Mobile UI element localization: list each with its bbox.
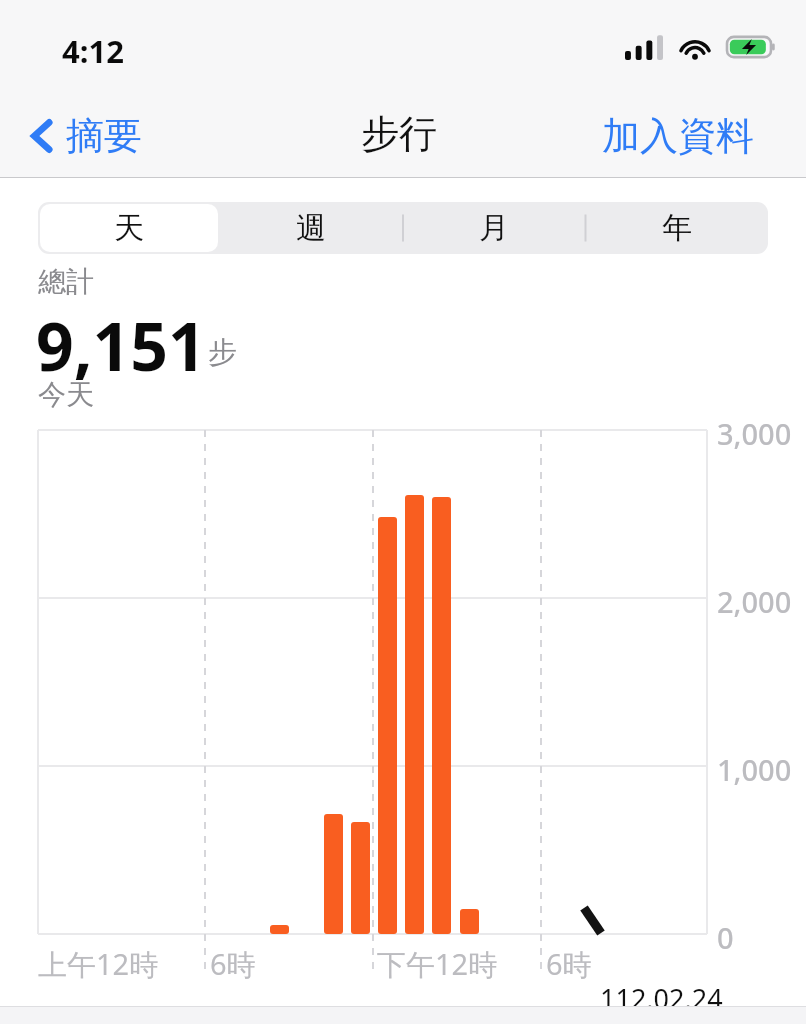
staticText: 1,000: [717, 750, 792, 789]
staticText: 下午12時: [377, 944, 498, 984]
staticText: 2,000: [717, 582, 792, 621]
button[interactable]: 加入資料: [596, 106, 760, 166]
staticText: 總計: [38, 264, 94, 299]
staticText: 步: [208, 334, 237, 371]
staticText: 步行: [361, 110, 437, 158]
staticText: 週: [296, 209, 326, 247]
staticText: 0: [717, 918, 734, 957]
staticText: 6時: [546, 944, 592, 984]
staticText: 摘要: [66, 112, 142, 160]
staticText: 月: [479, 209, 509, 247]
button[interactable]: 摘要: [24, 106, 148, 166]
other: Battery charging: [727, 34, 777, 60]
staticText: 天: [114, 209, 144, 247]
other: Cellular signal: [625, 35, 663, 60]
staticText: 年: [662, 209, 692, 247]
staticText: 加入資料: [602, 112, 754, 160]
button[interactable]: 天: [40, 204, 218, 252]
staticText: 3,000: [717, 414, 792, 453]
button[interactable]: 月: [404, 204, 583, 252]
staticText: 上午12時: [38, 944, 159, 984]
staticText: 今天: [38, 377, 94, 412]
button[interactable]: 年: [587, 204, 766, 252]
staticText: 112.02.24: [600, 980, 723, 1017]
staticText: 4:12: [62, 30, 124, 72]
other: Wi-Fi: [678, 35, 712, 60]
staticText: 6時: [210, 944, 256, 984]
staticText: 9,151: [36, 300, 206, 390]
button[interactable]: 週: [222, 204, 400, 252]
